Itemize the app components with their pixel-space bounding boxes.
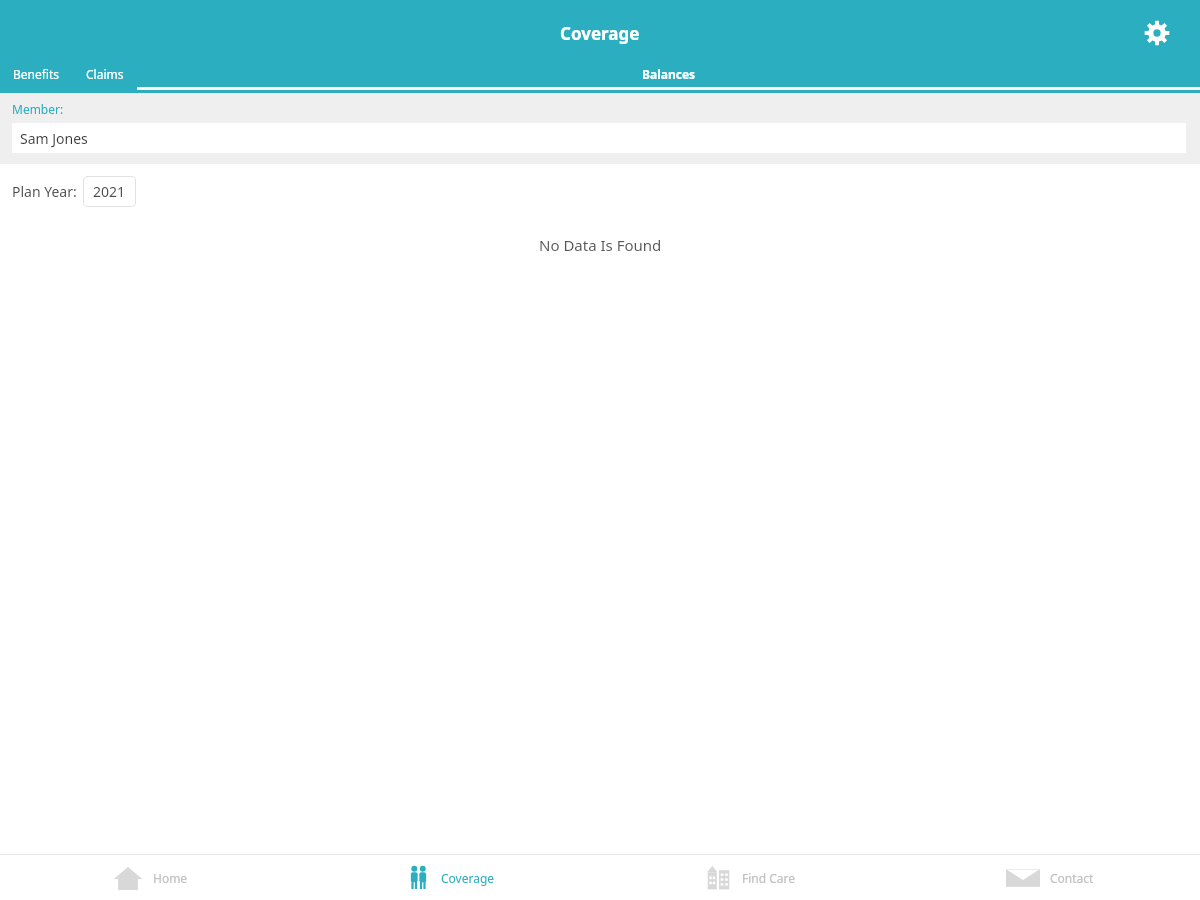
staticText: Coverage <box>560 22 640 45</box>
button[interactable]: Sam Jones <box>12 123 1186 153</box>
button[interactable]: Coverage <box>300 855 600 900</box>
button[interactable]: Find Care <box>600 855 900 900</box>
button[interactable]: Contact <box>900 855 1200 900</box>
staticText: Coverage <box>441 870 495 886</box>
staticText: Benefits <box>13 66 60 82</box>
staticText: Plan Year: <box>12 182 77 201</box>
staticText: Find Care <box>742 870 796 886</box>
staticText: Home <box>153 870 188 886</box>
staticText: Member: <box>12 101 64 117</box>
staticText: Sam Jones <box>20 129 88 148</box>
button[interactable]: Home <box>0 855 300 900</box>
button[interactable]: Balances <box>137 66 1200 93</box>
button[interactable]: Claims <box>73 66 137 93</box>
button[interactable]: Benefits <box>0 66 73 93</box>
staticText: 2021 <box>93 182 126 201</box>
staticText: Contact <box>1050 870 1094 886</box>
button[interactable]: 2021 <box>83 176 136 207</box>
staticText: Balances <box>642 66 696 82</box>
staticText: Claims <box>86 66 124 82</box>
button[interactable]: Settings <box>1134 10 1180 56</box>
staticText: No Data Is Found <box>539 235 662 255</box>
